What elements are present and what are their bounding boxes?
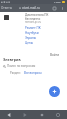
button[interactable]: Back (2, 110, 16, 119)
staticText: бесплатно (25, 17, 41, 21)
staticText: Поиск по вопросам (7, 64, 36, 68)
button[interactable]: More options (59, 4, 65, 12)
staticText: 17:53 (54, 0, 61, 3)
button[interactable]: Tabs (51, 4, 57, 12)
staticText: remont-pc.ru (25, 20, 42, 24)
button[interactable]: Recent apps (51, 110, 65, 119)
button[interactable]: Ask a question (49, 86, 60, 97)
staticText: otvet.mail.ru (22, 6, 40, 10)
staticText: Ремонт ПК (25, 26, 41, 30)
staticText: Цены (25, 41, 33, 45)
staticText: Экраны (25, 36, 37, 40)
staticText: Раздел: (10, 71, 21, 75)
button[interactable]: Войти (50, 53, 60, 57)
button[interactable]: Поиск по вопросам (3, 64, 36, 68)
staticText: Электрик (3, 57, 21, 62)
staticText: Ответы (1, 6, 12, 10)
button[interactable]: Forward (18, 110, 32, 119)
staticText: Войти (50, 53, 60, 57)
button[interactable]: Все вопросы (24, 71, 42, 75)
staticText: Все вопросы (24, 71, 42, 75)
staticText: Ноутбуки (25, 31, 39, 35)
button[interactable]: Home (35, 110, 49, 119)
staticText: Диагностика ПК (25, 13, 49, 17)
